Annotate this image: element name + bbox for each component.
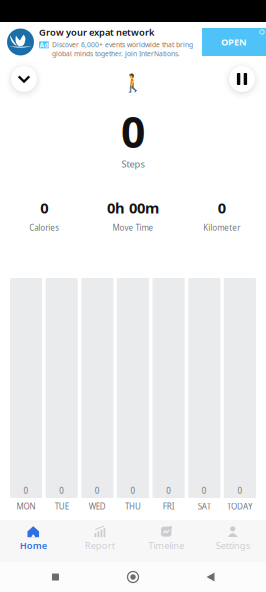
- staticText: OPEN: [221, 36, 247, 48]
- staticText: Steps: [121, 158, 144, 170]
- button[interactable]: Settings: [199, 520, 266, 562]
- staticText: Timeline: [148, 539, 184, 552]
- staticText: MON: [17, 501, 36, 512]
- staticText: TODAY: [227, 501, 253, 512]
- button[interactable]: Recents: [33, 562, 77, 592]
- staticText: 0: [237, 485, 242, 496]
- staticText: Ad: [39, 40, 48, 49]
- staticText: Settings: [216, 539, 250, 552]
- button[interactable]: Collapse: [4, 62, 44, 96]
- button[interactable]: OPEN: [202, 28, 266, 56]
- staticText: 0: [202, 485, 207, 496]
- staticText: Report: [85, 539, 115, 552]
- staticText: SAT: [198, 501, 211, 512]
- staticText: FRI: [163, 501, 175, 512]
- staticText: 0: [121, 103, 145, 160]
- staticText: Calories: [29, 222, 59, 233]
- staticText: global minds together. Join InterNations…: [52, 49, 180, 58]
- button[interactable]: Home: [0, 520, 66, 562]
- staticText: 0: [166, 485, 171, 496]
- staticText: Kilometer: [203, 222, 240, 233]
- button[interactable]: Home: [111, 562, 155, 592]
- staticText: 0: [40, 198, 48, 217]
- staticText: Grow your expat network: [39, 26, 154, 38]
- staticText: WED: [89, 501, 106, 512]
- staticText: 0: [95, 485, 100, 496]
- staticText: Discover 6,000+ events worldwide that br…: [52, 40, 193, 49]
- button[interactable]: Timeline: [133, 520, 199, 562]
- staticText: 0: [59, 485, 64, 496]
- button[interactable]: Report: [66, 520, 133, 562]
- staticText: 0: [24, 485, 29, 496]
- staticText: THU: [125, 501, 141, 512]
- staticText: 0: [130, 485, 135, 496]
- staticText: 0h 00m: [107, 198, 159, 217]
- button[interactable]: Pause: [222, 62, 262, 96]
- button[interactable]: Back: [188, 562, 232, 592]
- staticText: Move Time: [112, 222, 153, 233]
- staticText: 🚶: [122, 74, 144, 93]
- staticText: Home: [20, 539, 47, 552]
- staticText: TUE: [55, 501, 69, 512]
- staticText: 0: [218, 198, 226, 217]
